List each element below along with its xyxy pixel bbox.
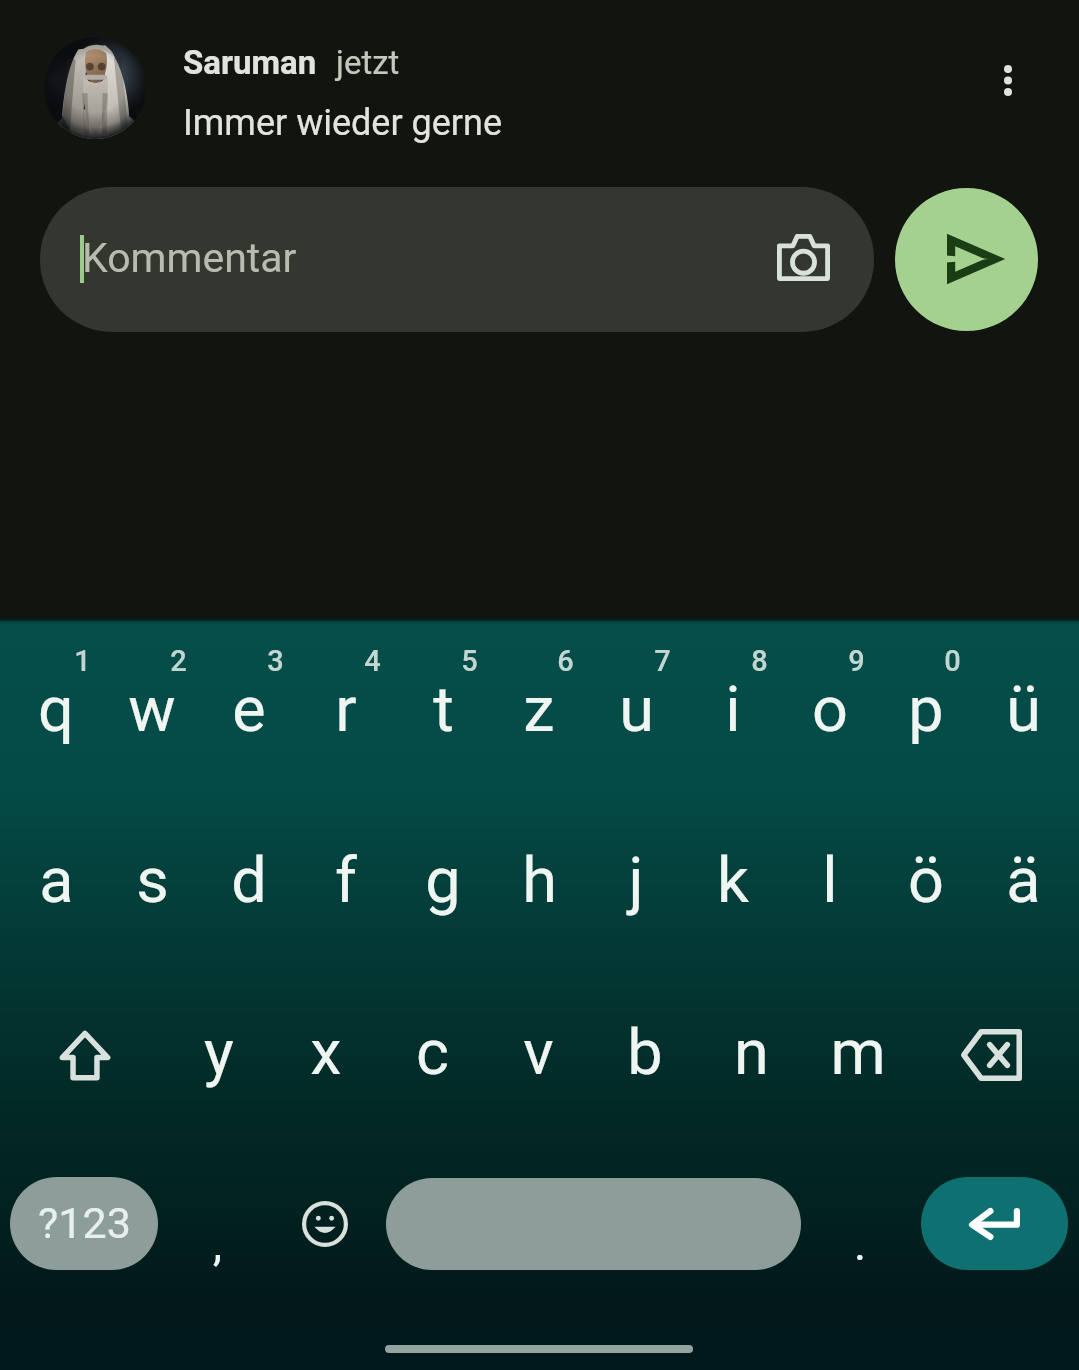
button[interactable] [393, 628, 491, 788]
staticText: ö [908, 844, 944, 918]
staticText: 2 [170, 644, 187, 678]
button[interactable]: Send [895, 188, 1038, 331]
button[interactable]: . [818, 1177, 902, 1270]
button[interactable] [883, 800, 981, 955]
button[interactable] [687, 800, 785, 955]
button[interactable] [593, 970, 700, 1125]
button[interactable] [379, 970, 486, 1125]
button[interactable] [589, 628, 687, 788]
button[interactable]: Space [386, 1178, 801, 1270]
button[interactable] [589, 800, 687, 955]
staticText: 3 [267, 644, 284, 678]
staticText: 8 [751, 644, 768, 678]
staticText: d [231, 844, 267, 918]
button[interactable] [272, 970, 379, 1125]
button[interactable] [491, 628, 589, 788]
button[interactable] [981, 628, 1079, 788]
staticText: l [822, 844, 838, 918]
button[interactable] [0, 628, 99, 788]
staticText: g [425, 844, 461, 918]
staticText: z [523, 673, 555, 747]
button[interactable] [700, 970, 807, 1125]
staticText: ä [1006, 844, 1041, 918]
staticText: 0 [944, 644, 961, 678]
staticText: s [136, 844, 169, 918]
staticText: x [310, 1016, 342, 1090]
staticText: Immer wieder gerne [183, 102, 503, 144]
staticText: Saruman [183, 43, 317, 82]
button[interactable] [197, 628, 295, 788]
staticText: 7 [654, 644, 671, 678]
button[interactable]: More options [968, 40, 1048, 120]
staticText: jetzt [336, 43, 400, 82]
button[interactable] [99, 628, 197, 788]
button[interactable]: Kommentar [40, 187, 874, 332]
button[interactable] [393, 800, 491, 955]
staticText: c [416, 1016, 449, 1090]
staticText: y [204, 1016, 234, 1090]
button[interactable] [687, 628, 785, 788]
staticText: n [734, 1016, 769, 1090]
staticText: t [433, 673, 454, 747]
staticText: 5 [461, 644, 478, 678]
button[interactable] [99, 800, 197, 955]
staticText: w [128, 673, 176, 747]
button[interactable] [295, 628, 393, 788]
button[interactable] [197, 800, 295, 955]
staticText: ü [1006, 673, 1041, 747]
button[interactable]: Enter [921, 1177, 1068, 1270]
staticText: 9 [848, 644, 865, 678]
button[interactable] [981, 800, 1079, 955]
staticText: 4 [364, 644, 381, 678]
button[interactable]: Take photo [762, 216, 844, 298]
staticText: a [39, 844, 74, 918]
button[interactable] [491, 800, 589, 955]
staticText: k [717, 844, 749, 918]
staticText: j [628, 844, 644, 918]
button[interactable]: Shift [0, 970, 165, 1125]
button[interactable]: Backspace [914, 970, 1079, 1125]
button[interactable] [883, 628, 981, 788]
button[interactable] [165, 970, 272, 1125]
staticText: 1 [74, 644, 91, 678]
button[interactable] [486, 970, 593, 1125]
staticText: i [725, 673, 741, 747]
staticText: h [522, 844, 557, 918]
staticText: , [213, 1217, 223, 1271]
button[interactable] [785, 628, 883, 788]
button[interactable] [785, 800, 883, 955]
staticText: e [232, 673, 266, 747]
staticText: u [619, 673, 654, 747]
button[interactable]: Emoji [283, 1177, 367, 1270]
button[interactable] [295, 800, 393, 955]
staticText: ?123 [38, 1198, 131, 1248]
staticText: Kommentar [82, 234, 297, 282]
staticText: r [335, 673, 357, 747]
button[interactable] [0, 800, 99, 955]
staticText: p [908, 673, 944, 747]
staticText: q [38, 673, 74, 747]
staticText: 6 [557, 644, 574, 678]
staticText: b [627, 1016, 663, 1090]
staticText: . [854, 1217, 867, 1271]
button[interactable] [807, 970, 914, 1125]
staticText: m [830, 1016, 886, 1090]
staticText: o [812, 673, 848, 747]
staticText: f [335, 844, 357, 918]
staticText: v [523, 1016, 554, 1090]
button[interactable]: ?123 [10, 1177, 158, 1270]
button[interactable]: , [176, 1177, 260, 1270]
